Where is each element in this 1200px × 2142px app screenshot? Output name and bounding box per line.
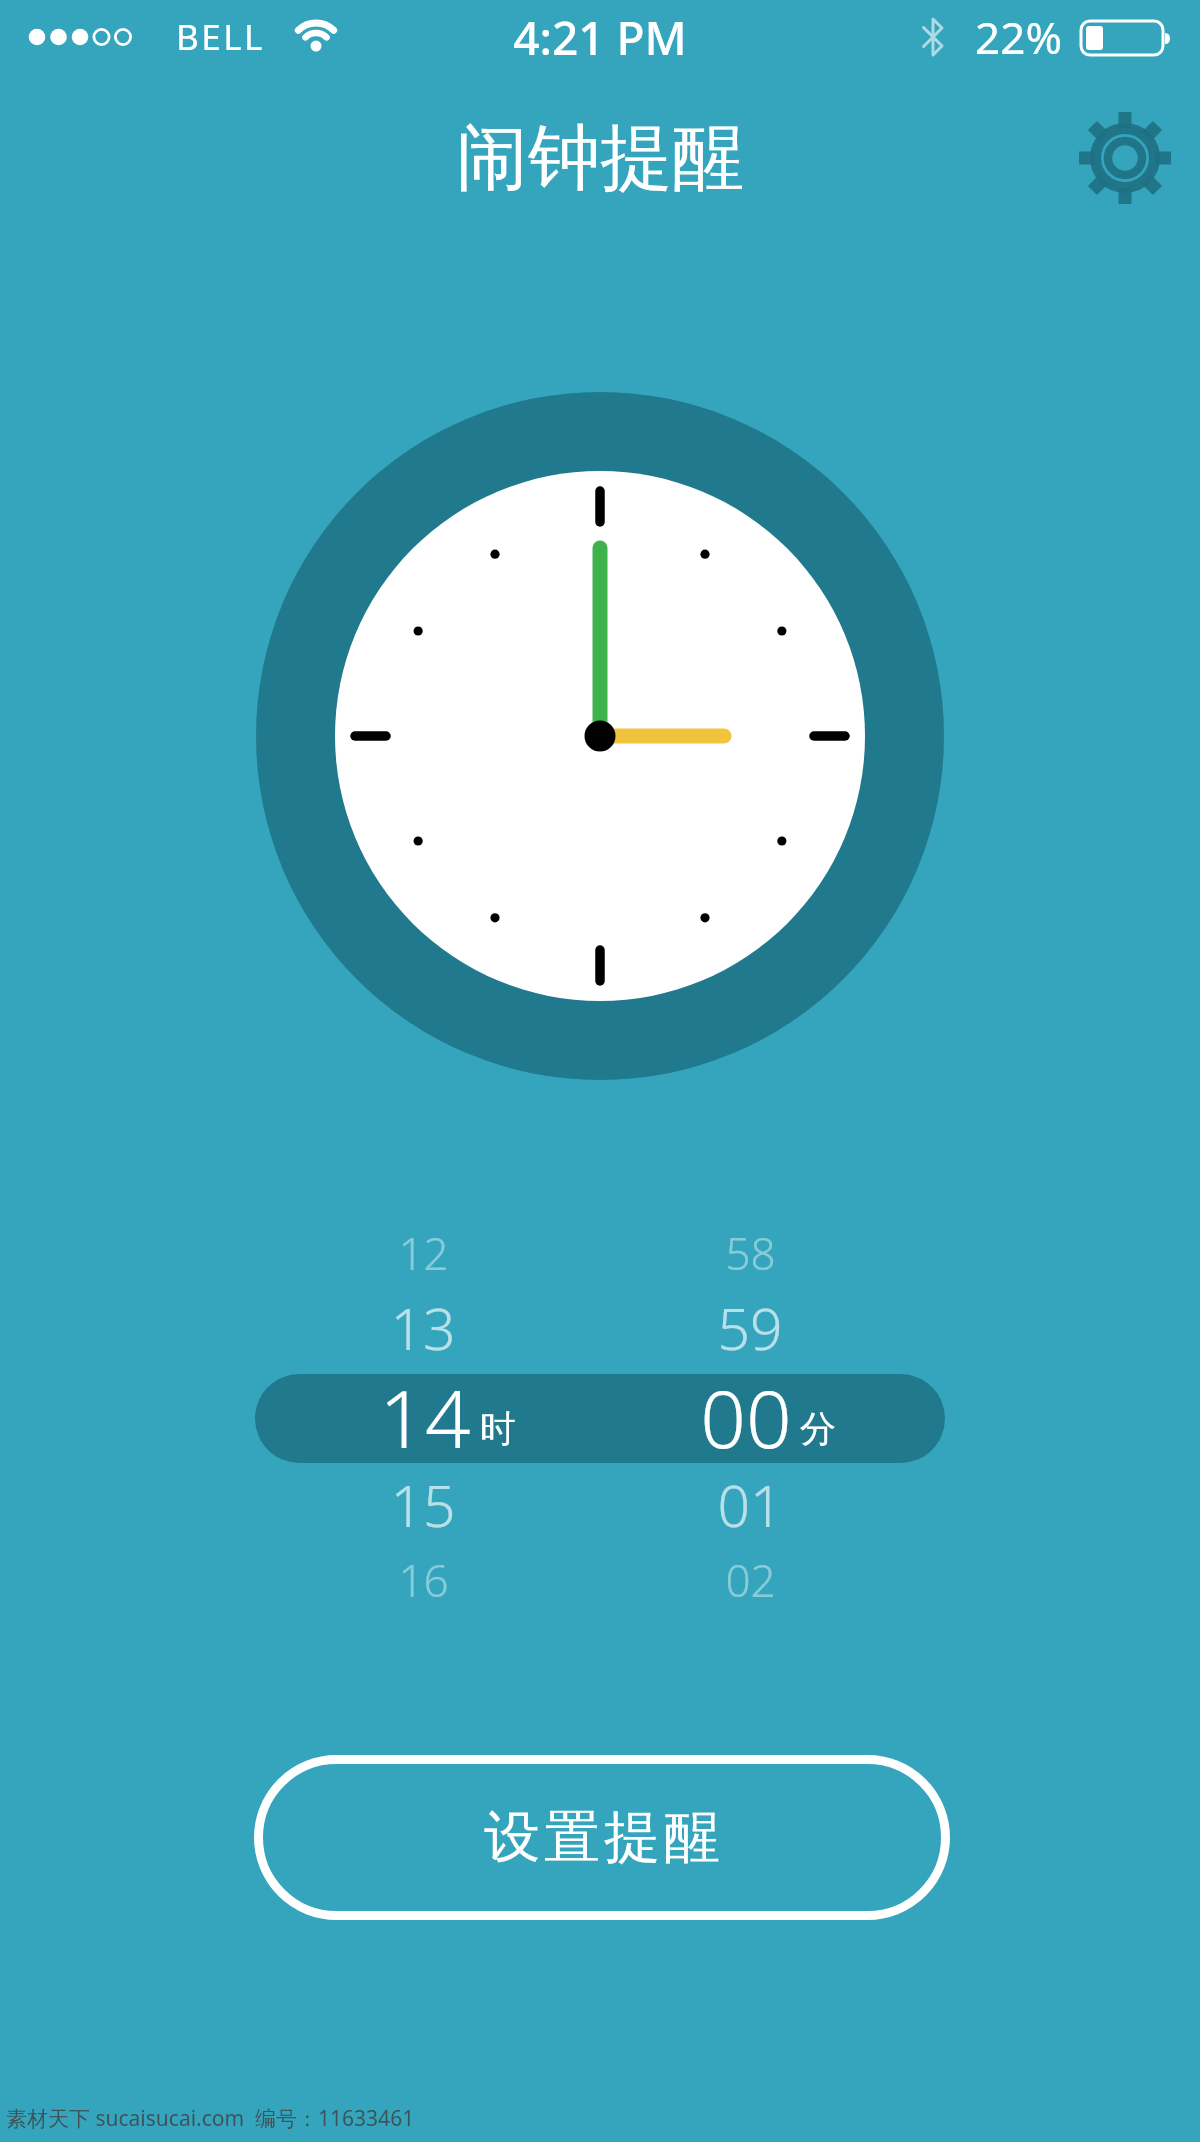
staticText: 13: [390, 1289, 456, 1367]
staticText: 01: [717, 1466, 783, 1544]
button[interactable]: 设置提醒: [254, 1755, 950, 1920]
staticText: 22%: [975, 7, 1062, 67]
staticText: 4:21 PM: [513, 6, 687, 69]
staticText: 设置提醒: [482, 1802, 722, 1873]
staticText: BELL: [176, 13, 265, 61]
staticText: 16: [398, 1550, 449, 1610]
staticText: 58: [725, 1223, 776, 1283]
button[interactable]: [1070, 103, 1180, 213]
staticText: 素材天下 sucaisucai.com 编号：11633461: [6, 2104, 415, 2133]
staticText: 闹钟提醒: [456, 113, 744, 204]
staticText: 12: [398, 1223, 449, 1283]
staticText: 59: [717, 1289, 783, 1367]
staticText: 02: [725, 1550, 776, 1610]
staticText: 时: [480, 1406, 516, 1451]
button[interactable]: [255, 1374, 945, 1463]
staticText: 14: [379, 1362, 471, 1471]
staticText: 00: [700, 1362, 792, 1471]
staticText: 分: [800, 1406, 836, 1451]
staticText: 15: [390, 1466, 456, 1544]
